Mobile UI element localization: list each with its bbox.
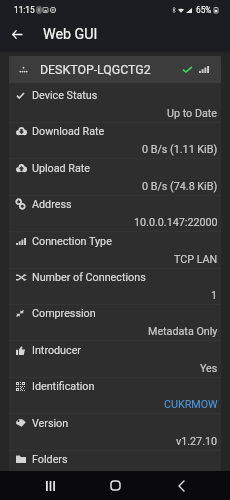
staticText: v1.27.10 — [176, 435, 218, 448]
staticText: Download Rate — [32, 125, 105, 138]
staticText: Device Status — [32, 89, 98, 102]
button[interactable]: Upload Rate — [9, 160, 221, 196]
staticText: DESKTOP-LQGCTG2 — [40, 63, 151, 77]
button[interactable]: Number of Connections — [9, 269, 221, 305]
staticText: Web GUI — [43, 26, 98, 43]
button[interactable]: Download Rate — [9, 123, 221, 159]
button[interactable]: Device Status — [9, 87, 221, 123]
staticText: Compression — [32, 307, 96, 320]
staticText: 0 B/s (74.8 KiB) — [142, 180, 218, 193]
staticText: Upload Rate — [32, 162, 91, 175]
staticText: CUKRMOW — [164, 398, 218, 411]
staticText: Connection Type — [32, 235, 112, 248]
staticText: Introducer — [32, 344, 82, 357]
button[interactable]: Back — [151, 471, 211, 500]
staticText: Up to Date — [167, 107, 218, 120]
button[interactable]: Identification — [9, 378, 221, 414]
staticText: Address — [32, 198, 72, 211]
staticText: Yes — [200, 362, 218, 375]
button[interactable]: Compression — [9, 305, 221, 341]
staticText: TCP LAN — [174, 253, 218, 266]
staticText: 10.0.0.147:22000 — [134, 216, 218, 229]
button[interactable]: DESKTOP-LQGCTG2 — [9, 56, 221, 83]
staticText: 11:15 — [14, 5, 35, 15]
button[interactable]: Home — [85, 471, 145, 500]
staticText: Identification — [32, 380, 95, 393]
button[interactable]: Back — [5, 22, 29, 46]
staticText: 1 — [211, 289, 218, 302]
button[interactable]: Connection Type — [9, 233, 221, 269]
staticText: 65% — [196, 5, 212, 15]
button[interactable]: Folders — [9, 451, 221, 471]
staticText: Folders — [32, 453, 68, 466]
staticText: Metadata Only — [148, 325, 218, 338]
staticText: Number of Connections — [32, 271, 146, 284]
staticText: 0 B/s (1.11 KiB) — [142, 143, 218, 156]
button[interactable]: Address — [9, 196, 221, 232]
button[interactable]: Recent apps — [20, 471, 80, 500]
staticText: Version — [32, 417, 69, 430]
button[interactable]: Version — [9, 415, 221, 451]
button[interactable]: Introducer — [9, 342, 221, 378]
